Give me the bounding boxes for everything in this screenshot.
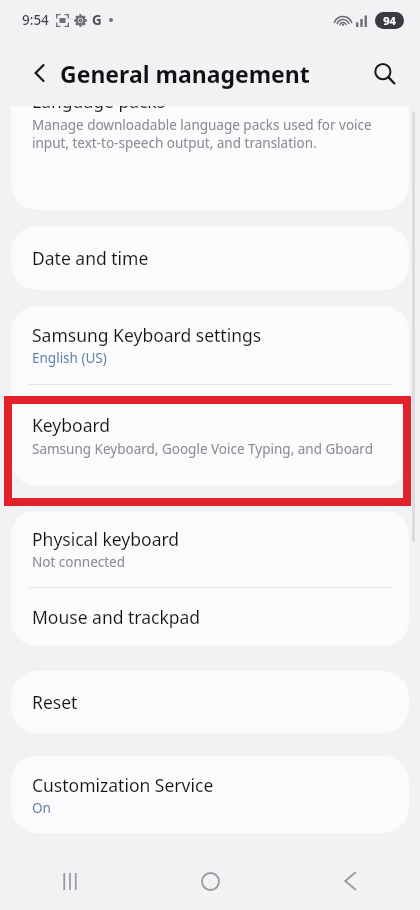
button[interactable]: Physical keyboard bbox=[11, 510, 409, 587]
button[interactable]: Samsung Keyboard settings bbox=[11, 306, 409, 384]
staticText: Samsung Keyboard, Google Voice Typing, a… bbox=[32, 440, 373, 458]
staticText: Samsung Keyboard settings bbox=[32, 323, 262, 347]
button[interactable]: Reset bbox=[11, 671, 409, 733]
staticText: English (US) bbox=[32, 349, 107, 367]
button[interactable]: Customization Service bbox=[11, 756, 409, 833]
staticText: Customization Service bbox=[32, 773, 214, 797]
staticText: Manage downloadable language packs used … bbox=[32, 116, 379, 152]
staticText: Keyboard bbox=[32, 413, 111, 437]
button[interactable]: Language packs bbox=[11, 106, 409, 210]
staticText: 9:54 bbox=[22, 11, 49, 29]
staticText: Language packs bbox=[32, 106, 166, 113]
staticText: Reset bbox=[32, 690, 78, 714]
staticText: 94 bbox=[383, 13, 396, 28]
button[interactable]: Back bbox=[280, 852, 420, 910]
staticText: Date and time bbox=[32, 246, 149, 270]
staticText: G bbox=[92, 11, 102, 29]
staticText: On bbox=[32, 799, 51, 817]
button[interactable]: Date and time bbox=[11, 226, 409, 290]
staticText: Physical keyboard bbox=[32, 527, 180, 551]
button[interactable]: Mouse and trackpad bbox=[11, 588, 409, 646]
staticText: Mouse and trackpad bbox=[32, 605, 201, 629]
staticText: Not connected bbox=[32, 553, 126, 571]
button[interactable]: Search bbox=[362, 51, 406, 95]
button[interactable]: Back bbox=[18, 51, 62, 95]
staticText: General management bbox=[60, 58, 310, 89]
button[interactable]: Home bbox=[140, 852, 280, 910]
button[interactable]: Keyboard bbox=[11, 385, 409, 486]
button[interactable]: Recents bbox=[0, 852, 140, 910]
